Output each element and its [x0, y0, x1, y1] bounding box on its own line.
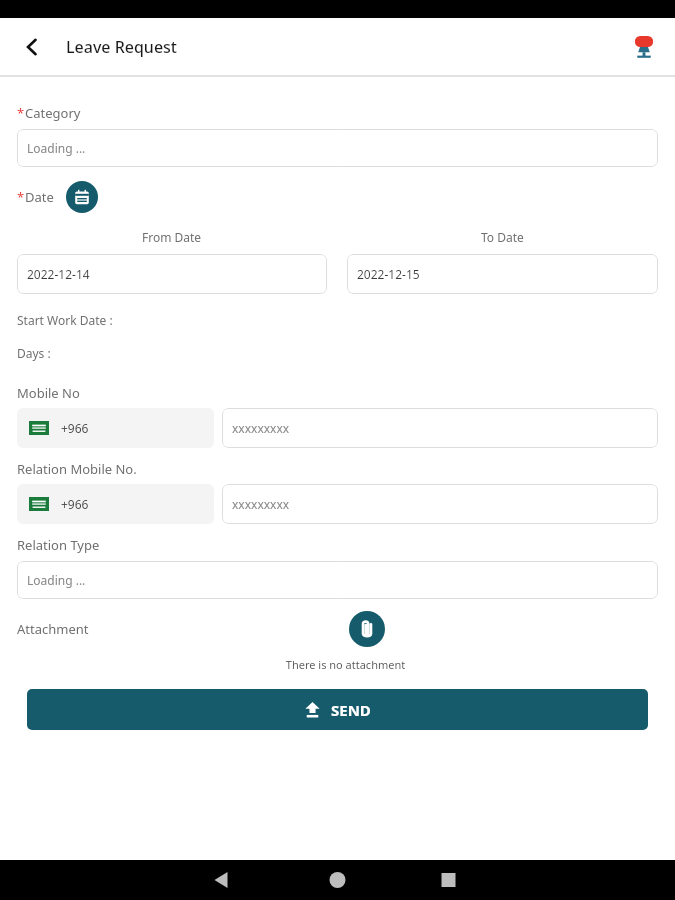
button[interactable]: 2022-12-14: [17, 254, 327, 294]
button[interactable]: Pick date: [66, 181, 98, 213]
staticText: *: [17, 104, 25, 122]
staticText: Mobile No: [17, 384, 80, 402]
staticText: Leave Request: [66, 36, 177, 58]
staticText: Loading ...: [27, 140, 86, 156]
staticText: Category: [25, 104, 81, 122]
staticText: There is no attachment: [25, 657, 666, 672]
staticText: Date: [25, 188, 54, 206]
button[interactable]: Loading ...: [17, 129, 658, 167]
button[interactable]: 2022-12-15: [347, 254, 658, 294]
staticText: To Date: [481, 229, 524, 245]
staticText: Attachment: [17, 620, 89, 638]
button[interactable]: xxxxxxxxx: [222, 408, 658, 448]
button[interactable]: Notifications: [627, 30, 661, 64]
staticText: xxxxxxxxx: [232, 420, 290, 436]
staticText: Loading ...: [27, 572, 86, 588]
button[interactable]: Back: [14, 29, 50, 65]
staticText: +966: [61, 496, 89, 512]
button[interactable]: +966: [17, 408, 214, 448]
button[interactable]: xxxxxxxxx: [222, 484, 658, 524]
staticText: Relation Mobile No.: [17, 460, 137, 478]
staticText: xxxxxxxxx: [232, 496, 290, 512]
button[interactable]: SEND: [27, 689, 648, 730]
staticText: 2022-12-14: [27, 266, 90, 282]
staticText: From Date: [142, 229, 202, 245]
staticText: Start Work Date :: [17, 312, 113, 328]
staticText: Relation Type: [17, 536, 100, 554]
staticText: Days :: [17, 345, 51, 361]
staticText: +966: [61, 420, 89, 436]
button[interactable]: Loading ...: [17, 561, 658, 599]
staticText: SEND: [331, 700, 371, 720]
button[interactable]: +966: [17, 484, 214, 524]
button[interactable]: Add attachment: [349, 611, 385, 647]
staticText: *: [17, 188, 25, 206]
staticText: 2022-12-15: [357, 266, 420, 282]
